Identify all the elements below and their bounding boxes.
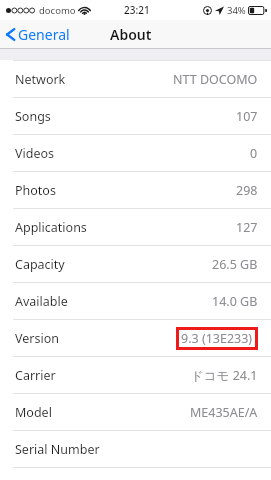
- button[interactable]: Available: [0, 283, 271, 319]
- staticText: Capacity: [15, 256, 65, 273]
- button[interactable]: Videos: [0, 135, 271, 171]
- staticText: Available: [15, 293, 68, 310]
- staticText: Version: [15, 330, 59, 347]
- staticText: Applications: [15, 219, 87, 236]
- staticText: Videos: [15, 145, 55, 162]
- staticText: 34%: [227, 4, 246, 17]
- button[interactable]: Photos: [0, 172, 271, 208]
- staticText: Model: [15, 404, 52, 421]
- staticText: 107: [236, 108, 258, 125]
- staticText: 23:21: [124, 3, 150, 17]
- button[interactable]: Back: [0, 22, 76, 47]
- staticText: 0: [250, 145, 258, 162]
- staticText: General: [18, 25, 70, 44]
- staticText: 14.0 GB: [212, 293, 258, 310]
- button[interactable]: Capacity: [0, 246, 271, 282]
- button[interactable]: Serial Number: [0, 431, 271, 467]
- staticText: Serial Number: [15, 441, 100, 458]
- button[interactable]: Network: [0, 61, 271, 97]
- staticText: Carrier: [15, 367, 56, 384]
- staticText: Photos: [15, 182, 56, 199]
- staticText: ME435AE/A: [190, 404, 258, 421]
- button[interactable]: Applications: [0, 209, 271, 245]
- staticText: docomo: [39, 4, 76, 17]
- button[interactable]: Version: [0, 320, 271, 356]
- staticText: ドコモ 24.1: [191, 367, 258, 384]
- button[interactable]: Carrier: [0, 357, 271, 393]
- staticText: 9.3 (13E233): [181, 330, 253, 347]
- other: Back: [6, 27, 15, 42]
- staticText: 26.5 GB: [212, 256, 258, 273]
- staticText: About: [110, 25, 152, 44]
- button[interactable]: Model: [0, 394, 271, 430]
- staticText: NTT DOCOMO: [173, 71, 258, 88]
- button[interactable]: Songs: [0, 98, 271, 134]
- staticText: Network: [15, 71, 66, 88]
- staticText: Songs: [15, 108, 51, 125]
- staticText: 127: [236, 219, 258, 236]
- staticText: 298: [236, 182, 258, 199]
